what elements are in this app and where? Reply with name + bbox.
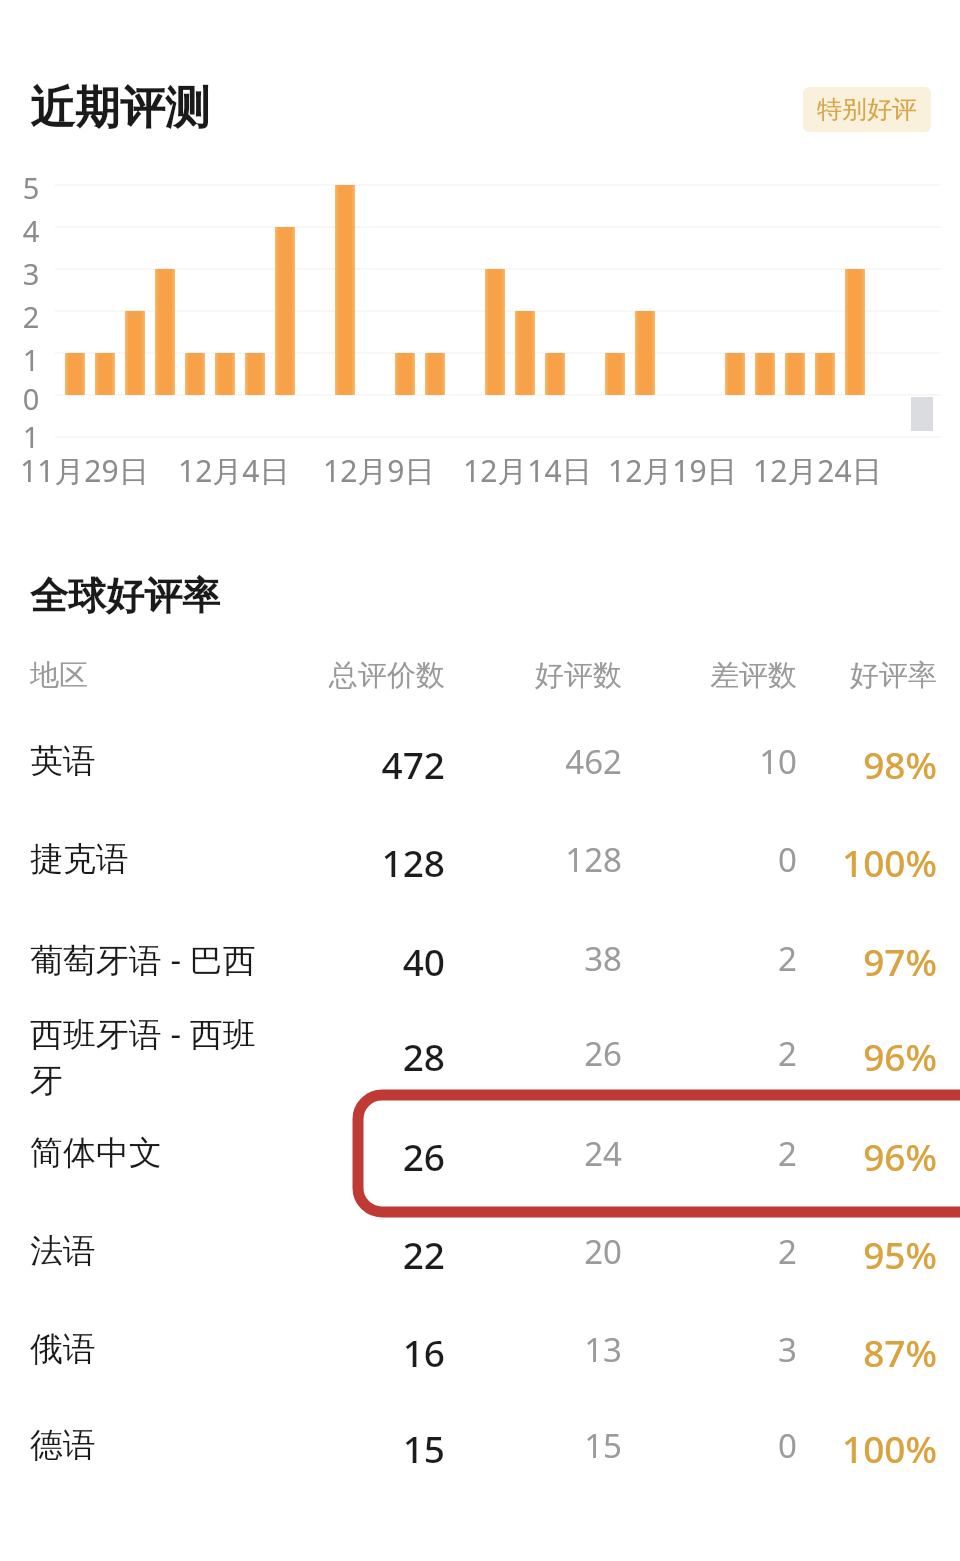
staticText: 128 — [225, 837, 445, 887]
staticText: 87% — [717, 1327, 937, 1377]
staticText: 0 — [577, 1423, 797, 1468]
button[interactable] — [0, 1212, 960, 1308]
staticText: 12月19日 — [608, 450, 737, 491]
staticText: 96% — [717, 1131, 937, 1181]
staticText: 26 — [402, 1031, 622, 1076]
staticText: 好评率 — [727, 657, 937, 694]
staticText: 40 — [225, 936, 445, 986]
staticText: 10 — [577, 739, 797, 784]
staticText: 20 — [402, 1229, 622, 1274]
staticText: 96% — [717, 1031, 937, 1081]
button[interactable] — [0, 1310, 960, 1406]
staticText: 22 — [225, 1229, 445, 1279]
staticText: 100% — [717, 837, 937, 887]
staticText: 2 — [577, 936, 797, 981]
button[interactable] — [0, 722, 960, 818]
staticText: 2 — [16, 297, 46, 336]
staticText: 2 — [577, 1229, 797, 1274]
button[interactable] — [0, 918, 960, 1002]
button[interactable] — [0, 1114, 960, 1210]
other: Recent reviews bar chart — [0, 0, 960, 500]
staticText: 472 — [225, 739, 445, 789]
staticText: 12月24日 — [753, 450, 882, 491]
staticText: 28 — [225, 1031, 445, 1081]
staticText: 15 — [225, 1423, 445, 1473]
staticText: 全球好评率 — [30, 572, 220, 620]
button[interactable] — [0, 1406, 960, 1502]
staticText: 3 — [577, 1327, 797, 1372]
staticText: 15 — [402, 1423, 622, 1468]
staticText: 38 — [402, 936, 622, 981]
staticText: 地区 — [30, 657, 88, 694]
staticText: 462 — [402, 739, 622, 784]
button[interactable]: 特别好评 — [803, 87, 931, 132]
staticText: 德语 — [30, 1424, 350, 1466]
staticText: 2 — [577, 1131, 797, 1176]
staticText: 简体中文 — [30, 1132, 350, 1174]
staticText: 俄语 — [30, 1328, 350, 1370]
staticText: 95% — [717, 1229, 937, 1279]
staticText: 0 — [16, 379, 46, 418]
staticText: 12月9日 — [323, 450, 435, 491]
staticText: 128 — [402, 837, 622, 882]
staticText: 2 — [577, 1031, 797, 1076]
staticText: 1 — [16, 340, 46, 379]
staticText: 好评数 — [412, 657, 622, 694]
staticText: 法语 — [30, 1230, 350, 1272]
staticText: 特别好评 — [817, 94, 917, 125]
staticText: 100% — [717, 1423, 937, 1473]
staticText: 差评数 — [587, 657, 797, 694]
staticText: 1 — [16, 417, 46, 456]
button[interactable] — [0, 820, 960, 916]
staticText: 11月29日 — [20, 450, 149, 491]
staticText: 西班牙语 - 西班 牙 — [30, 1011, 350, 1101]
staticText: 3 — [16, 254, 46, 293]
staticText: 4 — [16, 211, 46, 250]
staticText: 98% — [717, 739, 937, 789]
staticText: 总评价数 — [235, 657, 445, 694]
staticText: 24 — [402, 1131, 622, 1176]
staticText: 英语 — [30, 740, 350, 782]
staticText: 12月4日 — [178, 450, 290, 491]
staticText: 12月14日 — [463, 450, 592, 491]
staticText: 97% — [717, 936, 937, 986]
staticText: 13 — [402, 1327, 622, 1372]
staticText: 5 — [16, 168, 46, 207]
button[interactable] — [0, 1000, 960, 1112]
staticText: 捷克语 — [30, 838, 350, 880]
staticText: 16 — [225, 1327, 445, 1377]
staticText: 26 — [225, 1131, 445, 1181]
staticText: 0 — [577, 837, 797, 882]
staticText: 近期评测 — [30, 80, 210, 137]
staticText: 葡萄牙语 - 巴西 — [30, 937, 350, 982]
